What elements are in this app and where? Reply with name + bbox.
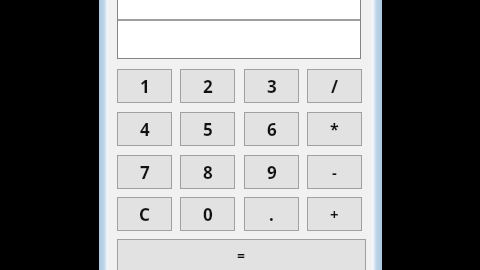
button[interactable]: 4 (117, 112, 172, 146)
button[interactable]: 6 (244, 112, 299, 146)
button[interactable]: - (307, 155, 362, 189)
button[interactable]: 3 (244, 69, 299, 103)
staticText: C (139, 203, 150, 226)
staticText: 1 (140, 75, 150, 98)
button[interactable]: * (307, 112, 362, 146)
button[interactable]: = (117, 239, 366, 270)
staticText: 7 (140, 161, 150, 184)
staticText: * (330, 118, 339, 140)
button[interactable]: 2 (180, 69, 235, 103)
button[interactable]: . (244, 197, 299, 231)
button[interactable]: C (117, 197, 172, 231)
button[interactable]: 8 (180, 155, 235, 189)
button[interactable]: 5 (180, 112, 235, 146)
staticText: + (330, 204, 339, 224)
button[interactable]: + (307, 197, 362, 231)
button[interactable]: 1 (117, 69, 172, 103)
staticText: . (269, 203, 274, 226)
staticText: 4 (140, 118, 150, 141)
button[interactable]: 9 (244, 155, 299, 189)
button[interactable]: / (307, 69, 362, 103)
staticText: = (237, 246, 246, 265)
staticText: 2 (203, 75, 213, 98)
staticText: / (331, 75, 339, 98)
button[interactable]: 0 (180, 197, 235, 231)
staticText: 0 (203, 203, 213, 226)
staticText: 9 (267, 161, 277, 184)
staticText: 8 (203, 161, 213, 184)
staticText: 6 (267, 118, 277, 141)
staticText: 3 (267, 75, 277, 98)
staticText: - (332, 162, 337, 182)
button[interactable]: 7 (117, 155, 172, 189)
staticText: 5 (203, 118, 213, 141)
